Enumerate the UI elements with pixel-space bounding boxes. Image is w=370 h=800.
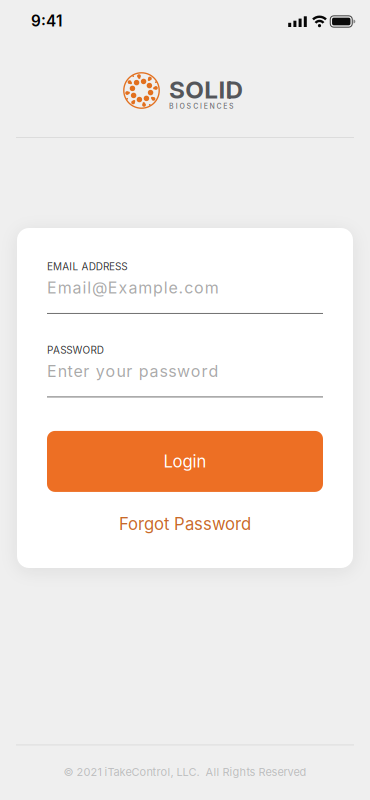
staticText: Login	[163, 451, 206, 471]
staticText: Forgot Password	[119, 514, 251, 534]
staticText: Email@Example.com	[47, 278, 219, 297]
button[interactable]: Email@Example.com	[47, 273, 323, 314]
staticText: Enter your password	[47, 362, 218, 381]
button[interactable]: Enter your password	[47, 356, 323, 397]
staticText: PASSWORD	[47, 344, 104, 356]
staticText: EMAIL ADDRESS	[47, 260, 127, 273]
button[interactable]: Login	[47, 431, 323, 492]
staticText: 9:41	[31, 12, 62, 30]
staticText: SOLID	[169, 75, 243, 104]
staticText: BIOSCIENCES	[169, 102, 234, 110]
staticText: © 2021 iTakeControl, LLC. All Rights Res…	[63, 765, 306, 779]
button[interactable]: Forgot Password	[47, 514, 323, 534]
